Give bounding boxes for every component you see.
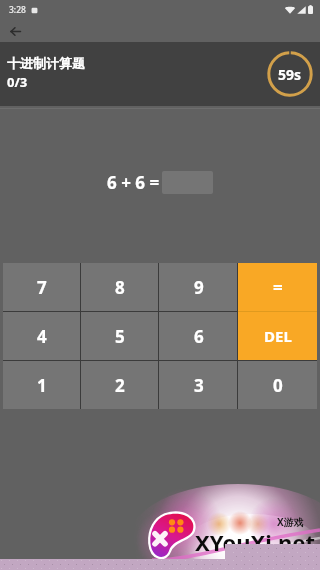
staticText: DEL [264, 326, 292, 346]
button[interactable]: 7 [3, 263, 81, 311]
staticText: 3:28 [9, 4, 26, 16]
staticText: 9 [194, 276, 204, 299]
staticText: = [273, 276, 283, 299]
button[interactable]: 1 [3, 361, 81, 409]
button[interactable]: DEL [238, 312, 317, 360]
staticText: 3 [194, 374, 204, 397]
button[interactable]: 9 [159, 263, 238, 311]
button[interactable]: = [238, 263, 317, 311]
staticText: 7 [37, 276, 47, 299]
staticText: X游戏 [277, 515, 304, 529]
staticText: 十进制计算题 [7, 55, 85, 71]
button[interactable]: 8 [81, 263, 159, 311]
staticText: XYouXi.net [195, 527, 315, 557]
staticText: 1 [37, 374, 47, 397]
button[interactable]: 4 [3, 312, 81, 360]
staticText: 5 [115, 325, 125, 348]
button[interactable]: 5 [81, 312, 159, 360]
staticText: 2 [115, 374, 125, 397]
staticText: 6 + 6 = [107, 171, 160, 194]
button[interactable]: Timer [267, 51, 313, 97]
button[interactable]: 2 [81, 361, 159, 409]
staticText: 6 [194, 325, 204, 348]
staticText: 0 [273, 374, 283, 397]
staticText: 0/3 [7, 73, 28, 91]
button[interactable]: Back [2, 18, 28, 44]
button[interactable]: 6 [159, 312, 238, 360]
staticText: 4 [37, 325, 47, 348]
button[interactable]: 3 [159, 361, 238, 409]
staticText: 59s [278, 65, 302, 84]
button[interactable]: 0 [238, 361, 317, 409]
staticText: 8 [115, 276, 125, 299]
